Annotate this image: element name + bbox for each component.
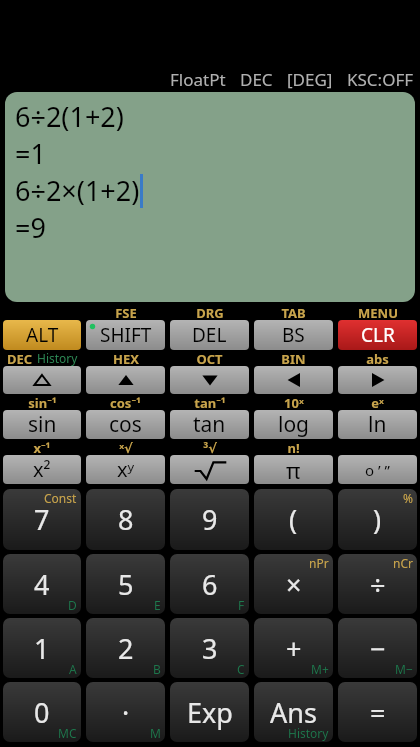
- button[interactable]: 1: [3, 618, 81, 678]
- staticText: tan: [193, 410, 226, 439]
- button[interactable]: Down: [170, 366, 249, 394]
- button[interactable]: CLR: [338, 320, 417, 350]
- staticText: nCr: [393, 555, 413, 571]
- staticText: 2: [118, 630, 134, 667]
- button[interactable]: ): [338, 489, 417, 550]
- staticText: sin⁻¹: [28, 394, 57, 410]
- staticText: tan⁻¹: [194, 394, 226, 410]
- button[interactable]: Right: [338, 366, 417, 394]
- button[interactable]: Ans: [254, 682, 333, 742]
- button[interactable]: =: [338, 682, 417, 742]
- staticText: nPr: [309, 555, 329, 571]
- button[interactable]: o ’ ”: [338, 455, 417, 484]
- staticText: F: [238, 597, 245, 613]
- staticText: FSE: [115, 304, 137, 320]
- staticText: ): [373, 501, 382, 538]
- staticText: (: [289, 501, 298, 538]
- button[interactable]: Up outline: [3, 366, 81, 394]
- staticText: =9: [15, 209, 46, 246]
- button[interactable]: π: [254, 455, 333, 484]
- button[interactable]: Left: [254, 366, 333, 394]
- staticText: 6: [202, 566, 218, 603]
- button[interactable]: ln: [338, 410, 417, 439]
- button[interactable]: 5: [86, 554, 165, 614]
- staticText: History: [37, 350, 78, 366]
- button[interactable]: SHIFT: [86, 320, 165, 350]
- button[interactable]: tan: [170, 410, 249, 439]
- button[interactable]: x²: [3, 455, 81, 484]
- button[interactable]: ×: [254, 554, 333, 614]
- staticText: −: [370, 630, 386, 667]
- staticText: =1: [15, 135, 46, 172]
- staticText: abs: [366, 350, 389, 366]
- staticText: DEC: [240, 68, 273, 91]
- button[interactable]: 4: [3, 554, 81, 614]
- button[interactable]: 6: [170, 554, 249, 614]
- staticText: [DEG]: [287, 68, 333, 91]
- staticText: ln: [368, 410, 387, 439]
- button[interactable]: 2: [86, 618, 165, 678]
- staticText: E: [154, 597, 161, 613]
- staticText: SHIFT: [100, 322, 152, 348]
- staticText: eˣ: [371, 394, 384, 410]
- staticText: KSC:OFF: [347, 68, 414, 91]
- staticText: Const: [44, 490, 77, 506]
- button[interactable]: BS: [254, 320, 333, 350]
- staticText: ³√: [203, 439, 217, 455]
- button[interactable]: Exp: [170, 682, 249, 742]
- staticText: History: [288, 725, 329, 741]
- button[interactable]: log: [254, 410, 333, 439]
- staticText: BS: [282, 322, 305, 348]
- staticText: 9: [202, 501, 218, 538]
- button[interactable]: +: [254, 618, 333, 678]
- staticText: Ans: [270, 694, 317, 731]
- staticText: CLR: [361, 322, 395, 348]
- button[interactable]: ÷: [338, 554, 417, 614]
- button[interactable]: sin: [3, 410, 81, 439]
- staticText: OCT: [196, 350, 223, 366]
- staticText: log: [278, 410, 310, 439]
- button[interactable]: ALT: [3, 320, 81, 350]
- staticText: 6÷2(1+2): [15, 98, 124, 135]
- staticText: ·: [122, 694, 130, 731]
- staticText: ÷: [370, 566, 386, 603]
- staticText: C: [237, 661, 245, 677]
- staticText: cos: [109, 410, 142, 439]
- button[interactable]: cos: [86, 410, 165, 439]
- staticText: x⁻¹: [33, 439, 51, 455]
- staticText: 6÷2×(1+2): [15, 172, 140, 209]
- staticText: HEX: [113, 350, 139, 366]
- staticText: 0: [34, 694, 50, 731]
- button[interactable]: 9: [170, 489, 249, 550]
- staticText: DRG: [196, 304, 224, 320]
- staticText: M+: [311, 661, 329, 677]
- button[interactable]: 7: [3, 489, 81, 550]
- staticText: B: [153, 661, 161, 677]
- staticText: MC: [58, 725, 77, 741]
- button[interactable]: 6÷2(1+2): [5, 92, 415, 302]
- button[interactable]: −: [338, 618, 417, 678]
- staticText: 3: [202, 630, 218, 667]
- button[interactable]: ·: [86, 682, 165, 742]
- staticText: ×: [286, 566, 302, 603]
- button[interactable]: DEL: [170, 320, 249, 350]
- staticText: π: [286, 455, 301, 484]
- staticText: M−: [395, 661, 413, 677]
- button[interactable]: 0: [3, 682, 81, 742]
- button[interactable]: 3: [170, 618, 249, 678]
- staticText: A: [69, 661, 77, 677]
- staticText: x²: [33, 456, 51, 483]
- button[interactable]: Square root: [170, 455, 249, 484]
- staticText: D: [68, 597, 77, 613]
- staticText: 4: [34, 566, 50, 603]
- staticText: 10ˣ: [284, 394, 304, 410]
- staticText: sin: [28, 410, 57, 439]
- staticText: BIN: [281, 350, 306, 366]
- staticText: TAB: [281, 304, 306, 320]
- staticText: FloatPt: [170, 68, 226, 91]
- button[interactable]: (: [254, 489, 333, 550]
- button[interactable]: 8: [86, 489, 165, 550]
- button[interactable]: Up: [86, 366, 165, 394]
- button[interactable]: xʸ: [86, 455, 165, 484]
- staticText: =: [370, 694, 386, 731]
